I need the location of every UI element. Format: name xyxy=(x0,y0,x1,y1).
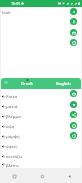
staticText: μορφή xyxy=(6,133,20,139)
button[interactable]: History xyxy=(70,132,77,139)
button[interactable]: Microphone xyxy=(70,18,77,25)
button[interactable]: Translate xyxy=(70,39,77,46)
staticText: όψη xyxy=(6,123,15,129)
button[interactable]: Camera xyxy=(70,29,77,36)
button[interactable]: ματιά xyxy=(1,101,81,111)
button[interactable]: βλέμμα xyxy=(1,111,81,121)
staticText: βλέπω xyxy=(6,162,19,168)
staticText: English xyxy=(56,81,71,87)
button[interactable]: Copy xyxy=(70,90,77,97)
staticText: όψεις xyxy=(6,143,18,149)
button[interactable]: Back xyxy=(64,171,74,181)
button[interactable]: Share xyxy=(70,111,77,118)
button[interactable]: Recents xyxy=(9,171,19,181)
staticText: 16:05 xyxy=(11,1,21,6)
button[interactable]: βλέπω xyxy=(1,161,81,168)
button[interactable]: μορφή xyxy=(1,131,81,141)
button[interactable]: όψεις xyxy=(1,141,81,151)
button[interactable]: όψη xyxy=(1,121,81,131)
button[interactable]: Home xyxy=(37,171,47,181)
button[interactable]: English xyxy=(45,78,81,89)
staticText: βλέμμα xyxy=(6,113,21,119)
staticText: Κοίτα xyxy=(6,93,18,99)
button[interactable]: Κοίτα xyxy=(1,91,81,101)
button[interactable]: Close xyxy=(70,8,77,15)
staticText: Greek xyxy=(21,81,33,87)
staticText: look xyxy=(2,9,11,15)
button[interactable]: κοιτάζω xyxy=(1,151,81,161)
staticText: ματιά xyxy=(6,103,18,109)
button[interactable]: Menu xyxy=(4,81,8,84)
staticText: κοιτάζω xyxy=(6,153,23,159)
button[interactable]: Greek xyxy=(9,78,45,89)
button[interactable]: Favorite xyxy=(70,101,77,108)
button[interactable]: Settings xyxy=(70,122,77,129)
